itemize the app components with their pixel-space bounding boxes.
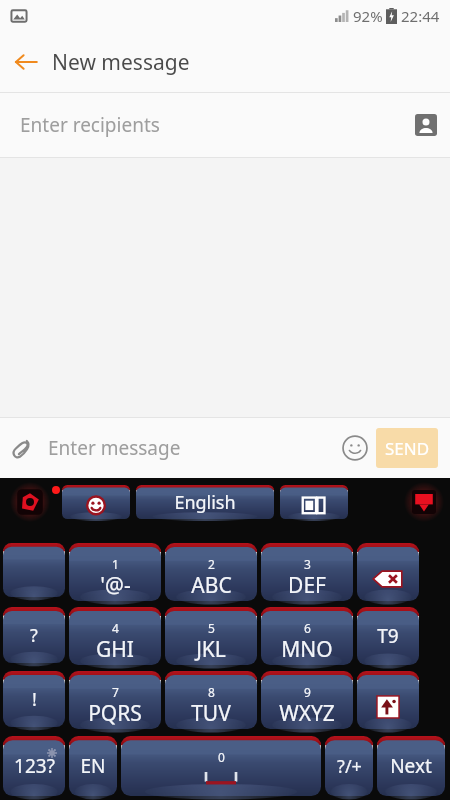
button[interactable]: 4 [69, 607, 161, 665]
staticText: 2 [208, 556, 215, 572]
button[interactable]: 6 [261, 607, 353, 665]
staticText: English [174, 490, 236, 515]
button[interactable]: Next [377, 736, 445, 796]
staticText: 3 [304, 556, 311, 572]
staticText: '@- [100, 571, 131, 600]
staticText: SEND [385, 437, 430, 460]
staticText: ABC [191, 571, 232, 600]
button[interactable]: 7 [69, 671, 161, 729]
staticText: ! [32, 687, 37, 712]
staticText: 9 [304, 684, 311, 700]
button[interactable]: ?/+ [325, 736, 373, 796]
staticText: EN [80, 753, 106, 779]
staticText: GHI [96, 635, 134, 664]
button[interactable]: Attach [0, 426, 44, 470]
staticText: Enter recipients [20, 112, 402, 138]
button[interactable]: Symbol [3, 543, 65, 597]
staticText: ? [30, 623, 38, 648]
staticText: Enter message [48, 435, 334, 461]
button[interactable]: Back [0, 36, 52, 88]
staticText: 22:44 [401, 6, 440, 26]
staticText: T9 [377, 623, 399, 649]
button[interactable]: Hide keyboard [404, 482, 444, 522]
button[interactable]: Add recipient from contacts [402, 101, 450, 149]
staticText: 6 [304, 620, 311, 636]
staticText: 1 [112, 556, 119, 572]
staticText: 4 [112, 620, 119, 636]
button[interactable]: 9 [261, 671, 353, 729]
button[interactable]: SEND [376, 428, 438, 468]
button[interactable]: Space [121, 736, 321, 796]
button[interactable]: 8 [165, 671, 257, 729]
staticText: ?/+ [337, 754, 362, 779]
staticText: 5 [208, 620, 215, 636]
button[interactable]: 5 [165, 607, 257, 665]
button[interactable]: T9 [357, 607, 419, 665]
button[interactable]: EN [69, 736, 117, 796]
button[interactable]: Backspace [357, 543, 419, 601]
button[interactable]: 2 [165, 543, 257, 601]
staticText: PQRS [88, 699, 142, 728]
staticText: 123? [14, 753, 55, 779]
button[interactable]: ? [3, 607, 65, 663]
button[interactable]: Keyboard settings [10, 482, 50, 522]
staticText: WXYZ [279, 699, 335, 728]
button[interactable]: 123? [3, 736, 65, 796]
button[interactable]: Shift [357, 671, 419, 729]
staticText: MNO [281, 635, 333, 664]
button[interactable]: Emoji [334, 427, 376, 469]
button[interactable]: Split keyboard [280, 485, 348, 519]
staticText: 8 [208, 684, 215, 700]
staticText: New message [52, 48, 190, 77]
button[interactable]: ! [3, 671, 65, 727]
button[interactable]: 3 [261, 543, 353, 601]
staticText: JKL [196, 635, 226, 664]
button[interactable]: Emoji keyboard [62, 485, 130, 519]
staticText: 7 [112, 684, 119, 700]
button[interactable]: English [136, 485, 274, 519]
staticText: TUV [191, 699, 231, 728]
staticText: 92% [353, 6, 383, 26]
staticText: DEF [288, 571, 326, 600]
staticText: 0 [218, 749, 225, 765]
button[interactable]: 1 [69, 543, 161, 601]
button[interactable]: Enter recipients [0, 93, 450, 157]
staticText: Next [390, 753, 432, 779]
